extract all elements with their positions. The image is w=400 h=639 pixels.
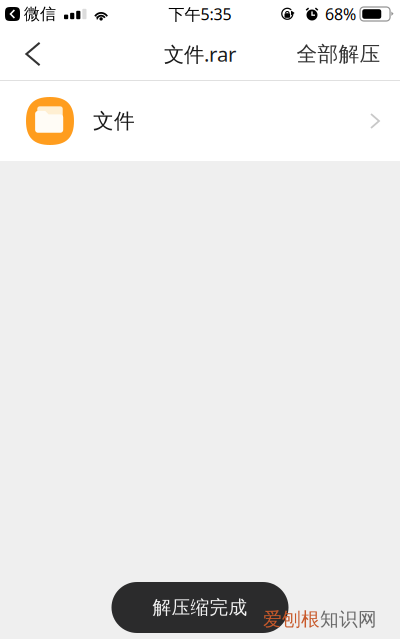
staticText: 全部解压 bbox=[296, 41, 380, 67]
staticText: 爱刨根 bbox=[263, 607, 320, 631]
staticText: 微信 bbox=[24, 4, 56, 24]
button[interactable]: 全部解压 bbox=[285, 30, 391, 78]
staticText: 文件.rar bbox=[164, 40, 236, 68]
staticText: 68% bbox=[325, 3, 356, 25]
button[interactable]: 返回 bbox=[10, 30, 56, 78]
staticText: 解压缩完成 bbox=[152, 596, 247, 619]
staticText: 文件 bbox=[93, 108, 135, 134]
staticText: 知识网 bbox=[320, 607, 377, 631]
button[interactable]: 文件 bbox=[0, 81, 400, 161]
staticText: 下午5:35 bbox=[168, 3, 231, 25]
